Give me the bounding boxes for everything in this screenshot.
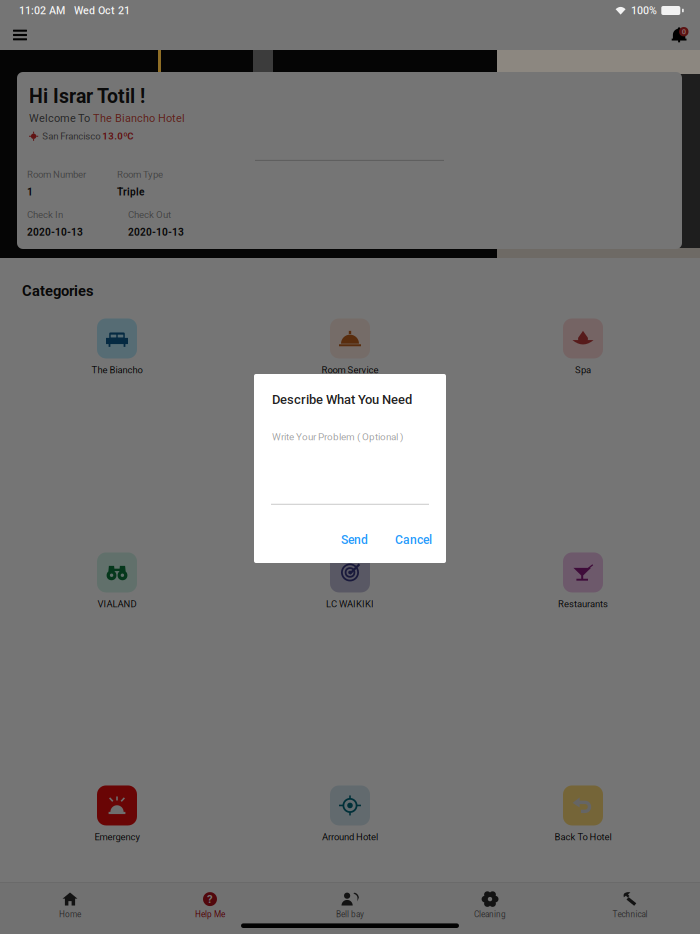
staticText: The Biancho (91, 364, 142, 376)
staticText: Bell bay (336, 910, 364, 919)
staticText: Triple (117, 186, 144, 198)
button[interactable]: Send (341, 533, 368, 547)
button[interactable]: Cancel (395, 533, 432, 547)
staticText: Room Type (117, 169, 163, 180)
staticText: Restaurants (558, 598, 608, 610)
button[interactable]: ? (140, 892, 280, 919)
staticText: Welcome To (29, 112, 93, 125)
button[interactable]: Cleaning (420, 892, 560, 919)
staticText: Help Me (195, 910, 225, 919)
staticText: 11:02 AM (19, 4, 65, 17)
button[interactable]: LC WAIKIKI (265, 552, 435, 610)
button[interactable]: Menu (6, 22, 34, 48)
staticText: LC WAIKIKI (326, 598, 374, 610)
staticText: 2020-10-13 (27, 226, 83, 238)
staticText: Hi Israr Totil ! (29, 85, 145, 108)
button[interactable]: Home (0, 892, 140, 919)
staticText: Check In (27, 209, 63, 220)
staticText: Categories (22, 282, 94, 300)
staticText: Back To Hotel (554, 831, 611, 843)
button[interactable]: The Biancho (32, 318, 202, 376)
staticText: Room Number (27, 169, 86, 180)
button[interactable]: VIALAND (32, 552, 202, 610)
button[interactable]: Arround Hotel (265, 785, 435, 843)
staticText: 0 (682, 27, 686, 36)
staticText: Check Out (128, 209, 171, 220)
staticText: Write Your Problem ( Optional ) (272, 431, 403, 443)
button[interactable]: Restaurants (498, 552, 668, 610)
staticText: The Biancho Hotel (93, 112, 185, 125)
staticText: 100% (631, 4, 657, 17)
staticText: 2020-10-13 (128, 226, 184, 238)
button[interactable]: Emergency (32, 785, 202, 843)
button[interactable]: Room Service (265, 318, 435, 376)
staticText: Room Service (321, 364, 378, 376)
staticText: Wed Oct 21 (74, 4, 130, 17)
staticText: Home (59, 910, 81, 919)
staticText: 13.0ºC (102, 131, 133, 142)
staticText: Describe What You Need (272, 392, 412, 407)
staticText: ? (207, 892, 213, 906)
staticText: Spa (575, 364, 591, 376)
button[interactable]: Notifications (664, 22, 694, 48)
staticText: Send (341, 533, 368, 547)
button[interactable]: Spa (498, 318, 668, 376)
staticText: Technical (612, 910, 647, 919)
staticText: Arround Hotel (322, 831, 378, 843)
button[interactable]: Bell bay (280, 892, 420, 919)
staticText: Cleaning (474, 910, 506, 919)
button[interactable]: Technical (560, 892, 700, 919)
button[interactable]: Back To Hotel (498, 785, 668, 843)
staticText: Emergency (94, 831, 139, 843)
staticText: VIALAND (97, 598, 136, 610)
staticText: 1 (27, 186, 33, 198)
staticText: San Francisco (42, 131, 102, 142)
staticText: Cancel (395, 533, 432, 547)
